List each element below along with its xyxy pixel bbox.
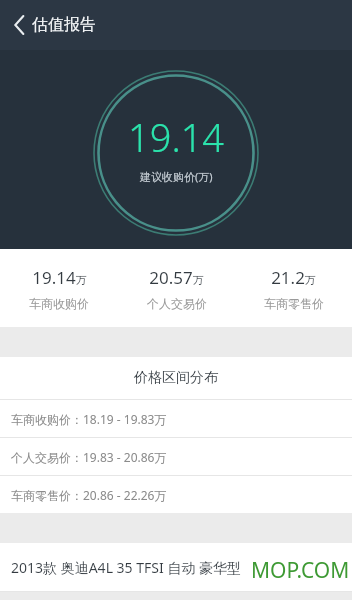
button[interactable]: 20.57万 xyxy=(118,249,235,327)
other: Back xyxy=(14,16,25,34)
staticText: 估值报告 xyxy=(32,15,96,35)
staticText: 21.2万 xyxy=(271,266,316,289)
staticText: 车商零售价 xyxy=(264,296,324,311)
staticText: 车商收购价 xyxy=(29,296,89,311)
button[interactable]: 车商收购价：18.19 - 19.83万 xyxy=(0,400,352,437)
button[interactable]: Back xyxy=(0,0,110,50)
staticText: 20.57万 xyxy=(149,266,204,289)
button[interactable]: 个人交易价：19.83 - 20.86万 xyxy=(0,438,352,475)
staticText: 19.14万 xyxy=(32,266,87,289)
staticText: 2013款 奥迪A4L 35 TFSI 自动 豪华型 xyxy=(11,558,242,577)
button[interactable]: 19.14万 xyxy=(0,249,118,327)
staticText: 19.14 xyxy=(128,111,225,163)
staticText: 个人交易价 xyxy=(147,296,207,311)
staticText: 个人交易价：19.83 - 20.86万 xyxy=(11,449,167,465)
staticText: 价格区间分布 xyxy=(134,369,218,387)
button[interactable]: 车商零售价：20.86 - 22.26万 xyxy=(0,476,352,513)
staticText: MOP.COM xyxy=(251,556,350,585)
staticText: 车商收购价：18.19 - 19.83万 xyxy=(11,411,167,427)
button[interactable]: 2013款 奥迪A4L 35 TFSI 自动 豪华型 xyxy=(0,543,352,591)
staticText: 建议收购价(万) xyxy=(140,169,213,184)
staticText: 车商零售价：20.86 - 22.26万 xyxy=(11,487,167,503)
button[interactable]: 21.2万 xyxy=(235,249,352,327)
